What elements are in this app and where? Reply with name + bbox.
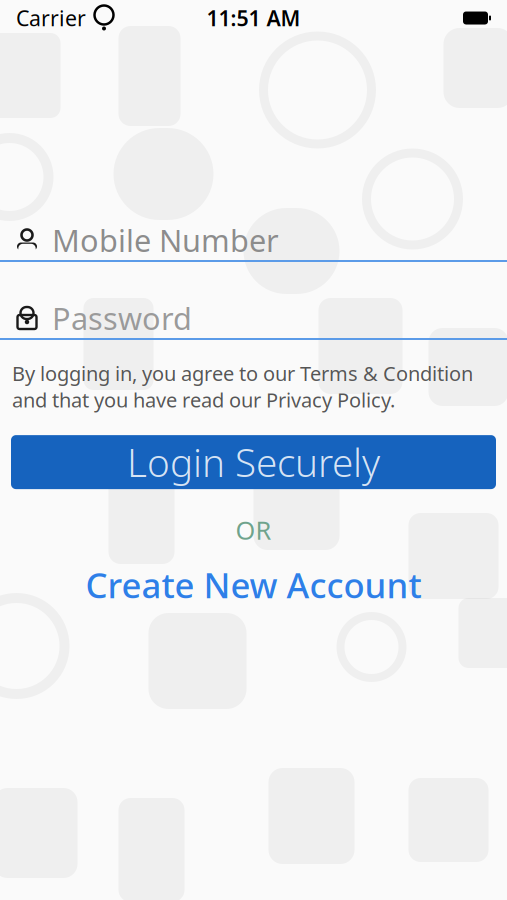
button[interactable]: Create New Account — [0, 565, 507, 605]
staticText: Carrier — [16, 4, 86, 32]
staticText: 11:51 AM — [206, 4, 300, 32]
button[interactable]: Login Securely — [11, 435, 496, 489]
button[interactable]: Password — [0, 298, 507, 340]
staticText: OR — [235, 513, 271, 547]
staticText: Create New Account — [85, 562, 421, 608]
staticText: Login Securely — [127, 436, 380, 488]
staticText: By logging in, you agree to our Terms & … — [12, 360, 473, 413]
button[interactable]: Mobile Number — [0, 220, 507, 262]
staticText: Password — [52, 298, 192, 338]
staticText: Mobile Number — [52, 220, 279, 260]
